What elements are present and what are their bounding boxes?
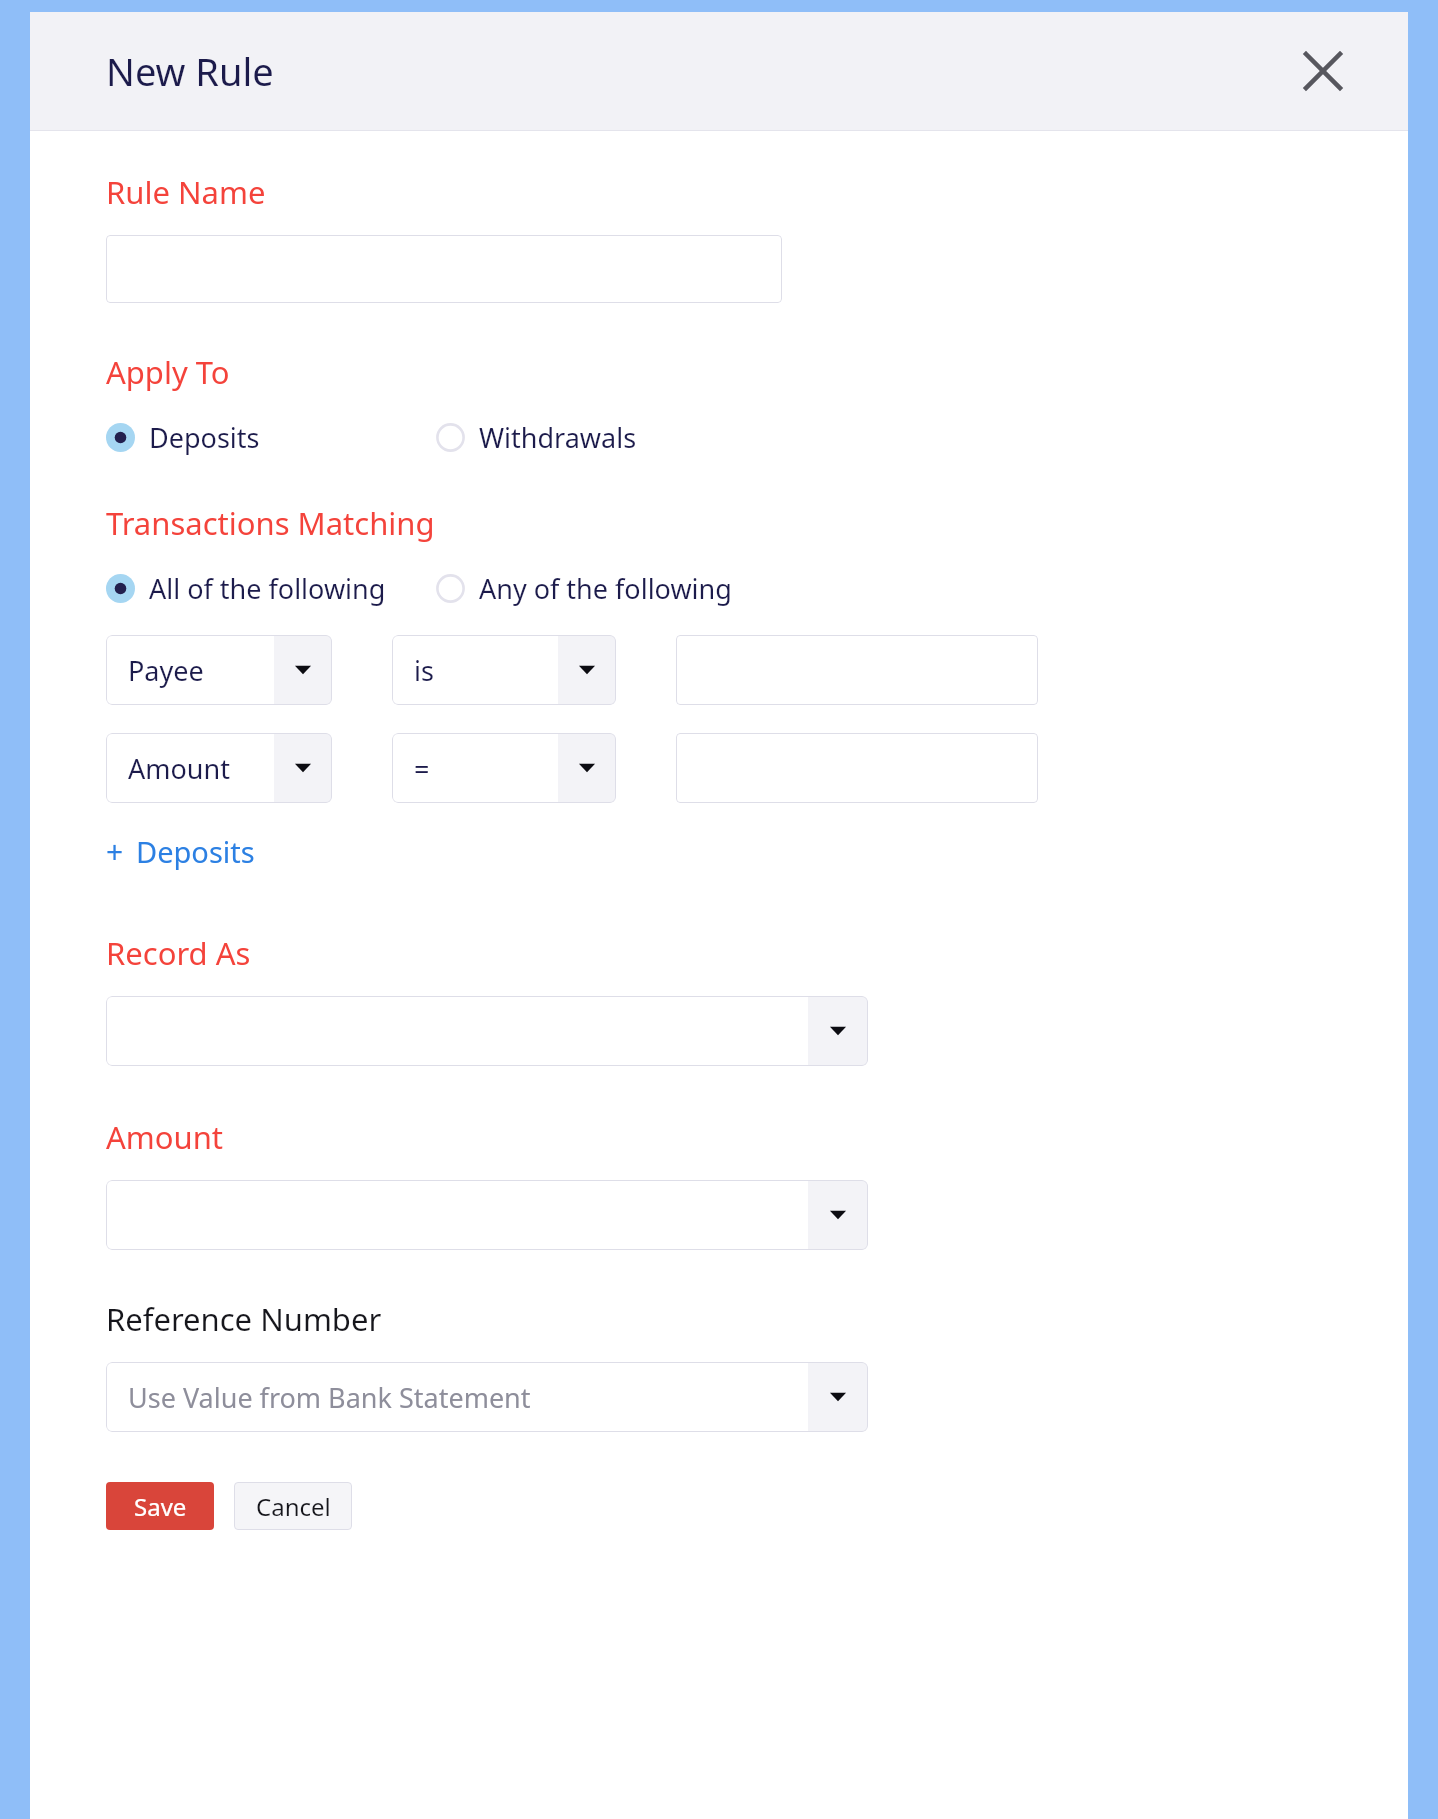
button[interactable]: = bbox=[392, 733, 616, 803]
button[interactable]: + bbox=[106, 831, 255, 872]
staticText: Reference Number bbox=[106, 1298, 382, 1340]
button[interactable]: Deposits bbox=[106, 419, 436, 456]
staticText: Rule Name bbox=[106, 171, 266, 213]
button[interactable] bbox=[676, 733, 1038, 803]
button[interactable] bbox=[106, 1180, 868, 1250]
staticText: Use Value from Bank Statement bbox=[128, 1379, 531, 1416]
button[interactable]: Use Value from Bank Statement bbox=[106, 1362, 868, 1432]
staticText: Payee bbox=[128, 652, 204, 689]
staticText: Withdrawals bbox=[479, 419, 637, 456]
button[interactable]: is bbox=[392, 635, 616, 705]
staticText: Save bbox=[134, 1490, 187, 1523]
staticText: Transactions Matching bbox=[106, 502, 435, 544]
staticText: is bbox=[414, 652, 434, 689]
button[interactable]: Withdrawals bbox=[436, 419, 637, 456]
staticText: All of the following bbox=[149, 570, 386, 607]
staticText: New Rule bbox=[106, 45, 274, 97]
staticText: Amount bbox=[106, 1116, 224, 1158]
staticText: Record As bbox=[106, 932, 251, 974]
button[interactable]: Amount bbox=[106, 733, 332, 803]
button[interactable]: Payee bbox=[106, 635, 332, 705]
staticText: Deposits bbox=[136, 832, 255, 871]
staticText: + bbox=[106, 831, 124, 872]
staticText: Amount bbox=[128, 750, 230, 787]
button[interactable]: All of the following bbox=[106, 570, 436, 607]
staticText: Cancel bbox=[256, 1490, 331, 1523]
button[interactable]: Save bbox=[106, 1482, 214, 1530]
button[interactable] bbox=[106, 996, 868, 1066]
staticText: Any of the following bbox=[479, 570, 732, 607]
button[interactable] bbox=[676, 635, 1038, 705]
staticText: Deposits bbox=[149, 419, 260, 456]
staticText: Apply To bbox=[106, 351, 230, 393]
button[interactable] bbox=[106, 235, 782, 303]
button[interactable]: Close bbox=[1296, 44, 1350, 98]
button[interactable]: Any of the following bbox=[436, 570, 732, 607]
button[interactable]: Cancel bbox=[234, 1482, 352, 1530]
staticText: = bbox=[414, 750, 430, 787]
